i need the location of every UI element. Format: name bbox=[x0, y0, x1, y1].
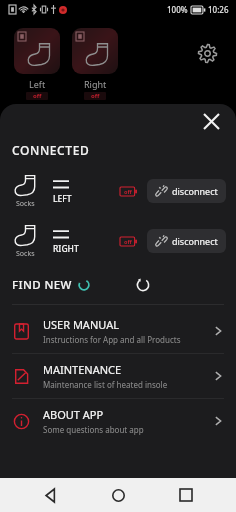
staticText: ABOUT APP bbox=[43, 407, 104, 422]
staticText: off bbox=[91, 92, 100, 100]
staticText: MAINTENANCE bbox=[43, 362, 122, 377]
staticText: Left bbox=[29, 78, 46, 90]
staticText: FIND NEW bbox=[12, 277, 72, 293]
button[interactable]: Close bbox=[198, 108, 224, 134]
staticText: LEFT bbox=[53, 193, 72, 205]
button[interactable]: disconnect bbox=[147, 179, 226, 203]
staticText: 10:26 bbox=[208, 4, 229, 15]
button[interactable]: ABOUT APP bbox=[0, 399, 236, 443]
staticText: USER MANUAL bbox=[43, 317, 119, 332]
button[interactable]: Right sock bbox=[72, 28, 118, 74]
staticText: off bbox=[33, 92, 42, 100]
staticText: Right bbox=[84, 78, 107, 90]
button[interactable]: disconnect bbox=[147, 229, 226, 253]
staticText: RIGHT bbox=[53, 243, 79, 255]
button[interactable]: USER MANUAL bbox=[0, 309, 236, 353]
staticText: Some questions about app bbox=[43, 424, 144, 435]
staticText: CONNECTED bbox=[12, 142, 90, 158]
staticText: disconnect bbox=[172, 185, 218, 197]
button[interactable]: Recents bbox=[169, 478, 203, 512]
staticText: Maintenance list of heated insole bbox=[43, 379, 168, 390]
staticText: Socks bbox=[16, 249, 35, 259]
staticText: Socks bbox=[16, 199, 35, 209]
button[interactable]: Back bbox=[34, 478, 68, 512]
button[interactable]: MAINTENANCE bbox=[0, 354, 236, 398]
staticText: 100% bbox=[167, 4, 188, 15]
staticText: Instructions for App and all Products bbox=[43, 334, 181, 345]
button[interactable]: Socks bbox=[0, 172, 236, 210]
staticText: off bbox=[124, 188, 132, 195]
button[interactable]: Refresh bbox=[132, 274, 154, 296]
staticText: off bbox=[124, 238, 132, 245]
button[interactable]: Home bbox=[101, 478, 135, 512]
button[interactable]: Socks bbox=[0, 222, 236, 260]
button[interactable]: Left sock bbox=[14, 28, 60, 74]
staticText: disconnect bbox=[172, 235, 218, 247]
button[interactable]: Settings bbox=[192, 38, 222, 68]
